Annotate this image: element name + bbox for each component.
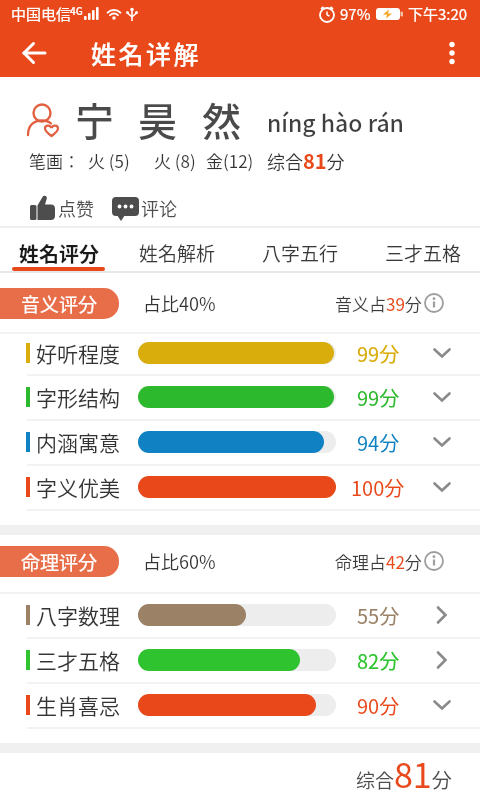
staticText: 姓名解析 [139,239,216,267]
staticText: 点赞 [58,195,94,221]
staticText: 火 (5) [88,148,130,173]
staticText: 火 (8) [154,148,196,173]
staticText: 宁 [75,91,115,147]
staticText: 然 [202,91,242,147]
staticText: 占比40% [143,290,216,316]
button[interactable] [256,234,351,272]
button[interactable] [28,192,98,224]
staticText: 94分 [357,428,400,457]
staticText: 命理占42分 [335,549,422,574]
staticText: níng hào rán [267,105,404,138]
staticText: 姓名详解 [91,35,202,71]
staticText: 内涵寓意 [36,427,120,457]
staticText: 好听程度 [36,338,120,368]
staticText: 生肖喜忌 [36,690,120,720]
staticText: 字义优美 [36,472,120,502]
staticText: 55分 [357,601,400,630]
button[interactable] [430,341,454,365]
staticText: 昊 [138,91,178,147]
button[interactable] [0,683,480,727]
button[interactable] [424,551,444,571]
button[interactable] [430,693,454,717]
button[interactable] [0,638,480,682]
button[interactable] [424,293,444,313]
staticText: 90分 [357,691,400,720]
button[interactable] [430,385,454,409]
staticText: 音义评分 [21,290,98,318]
staticText: 姓名评分 [19,239,99,268]
button[interactable] [133,234,228,272]
staticText: 八字数理 [36,600,120,630]
button[interactable] [440,40,464,66]
staticText: 100分 [351,473,405,502]
button[interactable] [430,430,454,454]
staticText: 金(12) [206,148,254,173]
staticText: 下午3:20 [408,3,468,25]
button[interactable] [110,192,180,224]
staticText: 三才五格 [385,239,462,267]
button[interactable] [0,465,480,509]
staticText: 82分 [357,646,400,675]
staticText: 笔画： [29,148,80,173]
button[interactable] [430,648,454,672]
button[interactable] [379,234,474,272]
button[interactable] [430,603,454,627]
staticText: 八字五行 [262,239,339,267]
staticText: 97% [340,3,371,25]
staticText: 99分 [357,339,400,368]
button[interactable] [0,420,480,464]
button[interactable] [430,475,454,499]
staticText: 4G [70,3,83,17]
staticText: 综合81分 [356,749,452,796]
button[interactable] [0,593,480,637]
staticText: 中国电信 [11,3,72,25]
button[interactable] [20,40,48,66]
staticText: 三才五格 [36,645,120,675]
staticText: 音义占39分 [335,291,422,316]
staticText: 99分 [357,383,400,412]
staticText: 字形结构 [36,382,120,412]
staticText: 命理评分 [21,548,98,576]
button[interactable]: 综合81分 [0,753,480,800]
button[interactable] [0,331,480,375]
staticText: 综合81分 [267,146,345,175]
staticText: 占比60% [143,548,216,574]
button[interactable] [0,375,480,419]
staticText: 评论 [141,195,177,221]
button[interactable] [10,234,115,272]
